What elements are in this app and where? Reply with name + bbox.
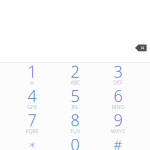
staticText: 8	[70, 109, 79, 131]
staticText: 0	[70, 134, 79, 150]
staticText: TUV	[70, 128, 80, 135]
staticText: PQRS	[25, 128, 38, 135]
staticText: ∗	[28, 137, 36, 150]
button[interactable]: 6	[96, 87, 139, 112]
button[interactable]: 7	[10, 112, 53, 136]
button[interactable]: 0	[53, 136, 96, 150]
staticText: 3	[113, 61, 122, 82]
button[interactable]: #	[96, 136, 139, 150]
button[interactable]: 9	[96, 112, 139, 136]
button[interactable]: 3	[96, 63, 139, 87]
staticText: 2	[70, 61, 79, 82]
staticText: 1	[27, 61, 36, 82]
staticText: 4	[27, 85, 36, 106]
button[interactable]: 8	[53, 112, 96, 136]
staticText: 7	[27, 109, 36, 131]
button[interactable]: 1	[10, 63, 53, 87]
button[interactable]: 2	[53, 63, 96, 87]
staticText: MNO	[111, 103, 124, 110]
staticText: DEF	[113, 79, 123, 86]
staticText: 9	[113, 109, 122, 131]
button[interactable]: Delete	[133, 41, 149, 55]
staticText: 6	[113, 85, 122, 106]
staticText: ∞	[29, 79, 35, 86]
staticText: WXYZ	[111, 128, 125, 135]
button[interactable]: 5	[53, 87, 96, 112]
staticText: 5	[70, 85, 79, 106]
staticText: GHI	[27, 103, 37, 110]
button[interactable]: 4	[10, 87, 53, 112]
staticText: ABC	[70, 79, 79, 86]
staticText: JKL	[71, 103, 78, 110]
button[interactable]: ∗	[10, 136, 53, 150]
staticText: #	[113, 136, 122, 150]
